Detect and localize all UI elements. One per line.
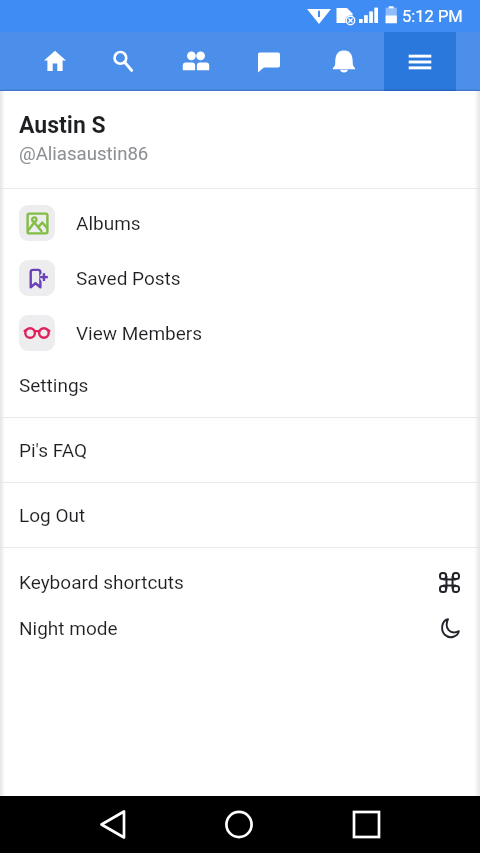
button[interactable]: Keyboard shortcuts [0,559,480,605]
staticText: View Members [76,322,203,344]
staticText: Saved Posts [76,267,181,289]
staticText: Keyboard shortcuts [19,571,184,593]
button[interactable]: Friends [160,32,233,91]
button[interactable]: Recent apps [342,796,390,853]
button[interactable]: Search [89,32,160,91]
staticText: Log Out [19,504,86,526]
button[interactable]: Albums [0,195,480,250]
staticText: Pi's FAQ [19,439,87,461]
button[interactable]: Austin S [0,91,480,188]
button[interactable]: Night mode [0,605,480,651]
button[interactable]: Notifications [307,32,383,91]
button[interactable]: Back [89,796,137,853]
button[interactable]: Settings [0,360,480,409]
button[interactable]: Log Out [0,483,480,547]
staticText: 5:12 PM [402,7,463,26]
button[interactable]: Home [0,32,89,91]
staticText: Night mode [19,617,118,639]
button[interactable]: Saved Posts [0,250,480,305]
staticText: Settings [19,374,89,396]
staticText: Austin S [19,112,106,139]
button[interactable]: Menu [382,32,480,91]
staticText: Albums [76,212,141,234]
button[interactable]: View Members [0,305,480,360]
button[interactable]: Messages [233,32,307,91]
button[interactable]: Home [215,796,263,853]
button[interactable]: Pi's FAQ [0,418,480,482]
staticText: @Aliasaustin86 [19,143,149,165]
